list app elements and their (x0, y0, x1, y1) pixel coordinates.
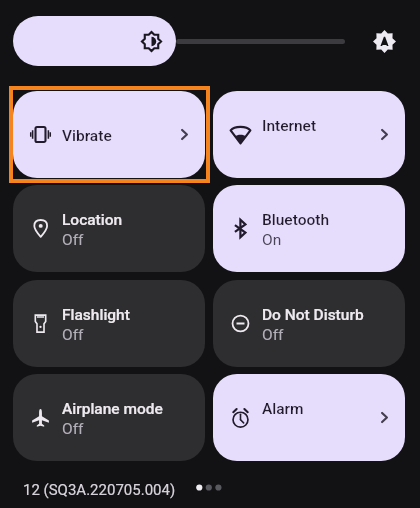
staticText: Off (62, 420, 84, 438)
button[interactable]: Auto brightness (362, 19, 406, 63)
staticText: Location (62, 211, 123, 229)
staticText: Do Not Disturb (262, 306, 364, 324)
button[interactable]: Vibrate (13, 91, 205, 178)
staticText: Bluetooth (262, 211, 330, 229)
staticText: Airplane mode (62, 400, 163, 418)
button[interactable]: Airplane mode (13, 374, 205, 461)
staticText: Off (62, 326, 84, 344)
button[interactable]: Alarm (213, 374, 405, 461)
staticText: Vibrate (62, 127, 112, 145)
button[interactable]: Bluetooth (213, 185, 405, 272)
button[interactable]: Brightness (13, 16, 176, 66)
staticText: 12 (SQ3A.220705.004) (23, 481, 176, 499)
staticText: Internet (262, 117, 317, 135)
staticText: Off (62, 231, 84, 249)
staticText: Alarm (262, 400, 304, 418)
button[interactable]: Flashlight (13, 280, 205, 367)
button[interactable]: Do Not Disturb (213, 280, 405, 367)
button[interactable]: Internet (213, 91, 405, 178)
staticText: On (262, 231, 282, 249)
button[interactable]: Location (13, 185, 205, 272)
staticText: Flashlight (62, 306, 130, 324)
staticText: Off (262, 326, 284, 344)
